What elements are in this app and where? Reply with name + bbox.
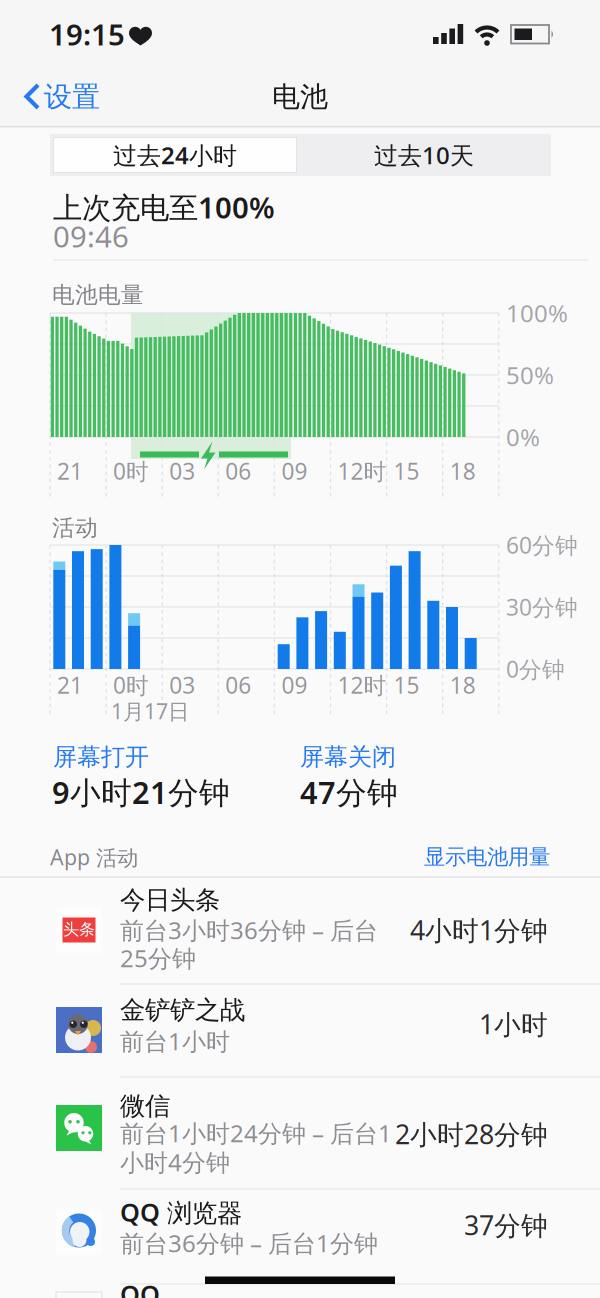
staticText: 25分钟	[120, 942, 196, 974]
staticText: QQ	[120, 1277, 160, 1298]
button[interactable]: 返回设置	[20, 75, 130, 119]
staticText: 09:46	[53, 216, 129, 255]
staticText: 09	[281, 670, 307, 700]
staticText: 屏幕关闭	[300, 742, 396, 772]
staticText: 过去10天	[374, 139, 474, 171]
staticText: 18	[450, 670, 476, 700]
button[interactable]: QQ 浏览器	[0, 1189, 600, 1284]
staticText: 1小时	[479, 1006, 548, 1042]
staticText: 今日头条	[120, 884, 220, 915]
staticText: 18	[450, 456, 476, 486]
staticText: 19:15	[49, 14, 125, 53]
staticText: 微信	[120, 1090, 170, 1121]
staticText: 50%	[506, 359, 554, 391]
button[interactable]: 显示电池用量	[380, 840, 550, 874]
staticText: 头条	[63, 920, 95, 939]
staticText: 活动	[52, 514, 98, 542]
button[interactable]: 金铲铲之战	[0, 984, 600, 1077]
staticText: 03	[169, 456, 195, 486]
staticText: 电池电量	[52, 281, 144, 309]
button[interactable]: 微信	[0, 1077, 600, 1189]
staticText: 前台1小时24分钟 – 后台1	[120, 1117, 392, 1149]
staticText: 47分钟	[300, 772, 398, 812]
staticText: 小时4分钟	[120, 1146, 230, 1178]
staticText: 06	[225, 670, 251, 700]
staticText: 0%	[506, 421, 540, 453]
staticText: 12时	[337, 456, 386, 486]
staticText: 0时	[113, 456, 149, 486]
staticText: 0时	[113, 670, 149, 700]
staticText: 过去24小时	[113, 139, 237, 171]
staticText: 设置	[44, 80, 100, 114]
staticText: 1月17日	[111, 697, 189, 725]
staticText: 前台36分钟 – 后台1分钟	[120, 1227, 378, 1259]
staticText: QQ 浏览器	[120, 1195, 242, 1229]
staticText: 前台1小时	[120, 1025, 230, 1057]
staticText: 屏幕打开	[53, 742, 149, 772]
staticText: 60分钟	[506, 530, 578, 560]
staticText: 0分钟	[506, 654, 565, 684]
button[interactable]: 过去10天	[302, 137, 546, 173]
staticText: 2小时28分钟	[395, 1116, 548, 1152]
staticText: 4小时1分钟	[410, 912, 548, 948]
button[interactable]: 过去24小时	[53, 137, 297, 173]
staticText: 显示电池用量	[424, 844, 550, 870]
staticText: 前台3小时36分钟 – 后台	[120, 914, 378, 946]
staticText: 15	[394, 456, 420, 486]
staticText: 21	[57, 456, 83, 486]
staticText: 37分钟	[464, 1207, 548, 1243]
staticText: 06	[225, 456, 251, 486]
staticText: 03	[169, 670, 195, 700]
staticText: 15	[394, 670, 420, 700]
staticText: 12时	[337, 670, 386, 700]
staticText: 21	[57, 670, 83, 700]
staticText: 电池	[272, 80, 328, 114]
staticText: 100%	[506, 297, 568, 329]
staticText: 金铲铲之战	[120, 994, 245, 1025]
staticText: 30分钟	[506, 592, 578, 622]
staticText: 9小时21分钟	[52, 772, 230, 812]
button[interactable]: QQ	[0, 1284, 600, 1298]
staticText: 上次充电至100%	[53, 187, 275, 226]
staticText: App 活动	[50, 843, 138, 871]
staticText: 09	[281, 456, 307, 486]
button[interactable]: 头条	[0, 878, 600, 984]
